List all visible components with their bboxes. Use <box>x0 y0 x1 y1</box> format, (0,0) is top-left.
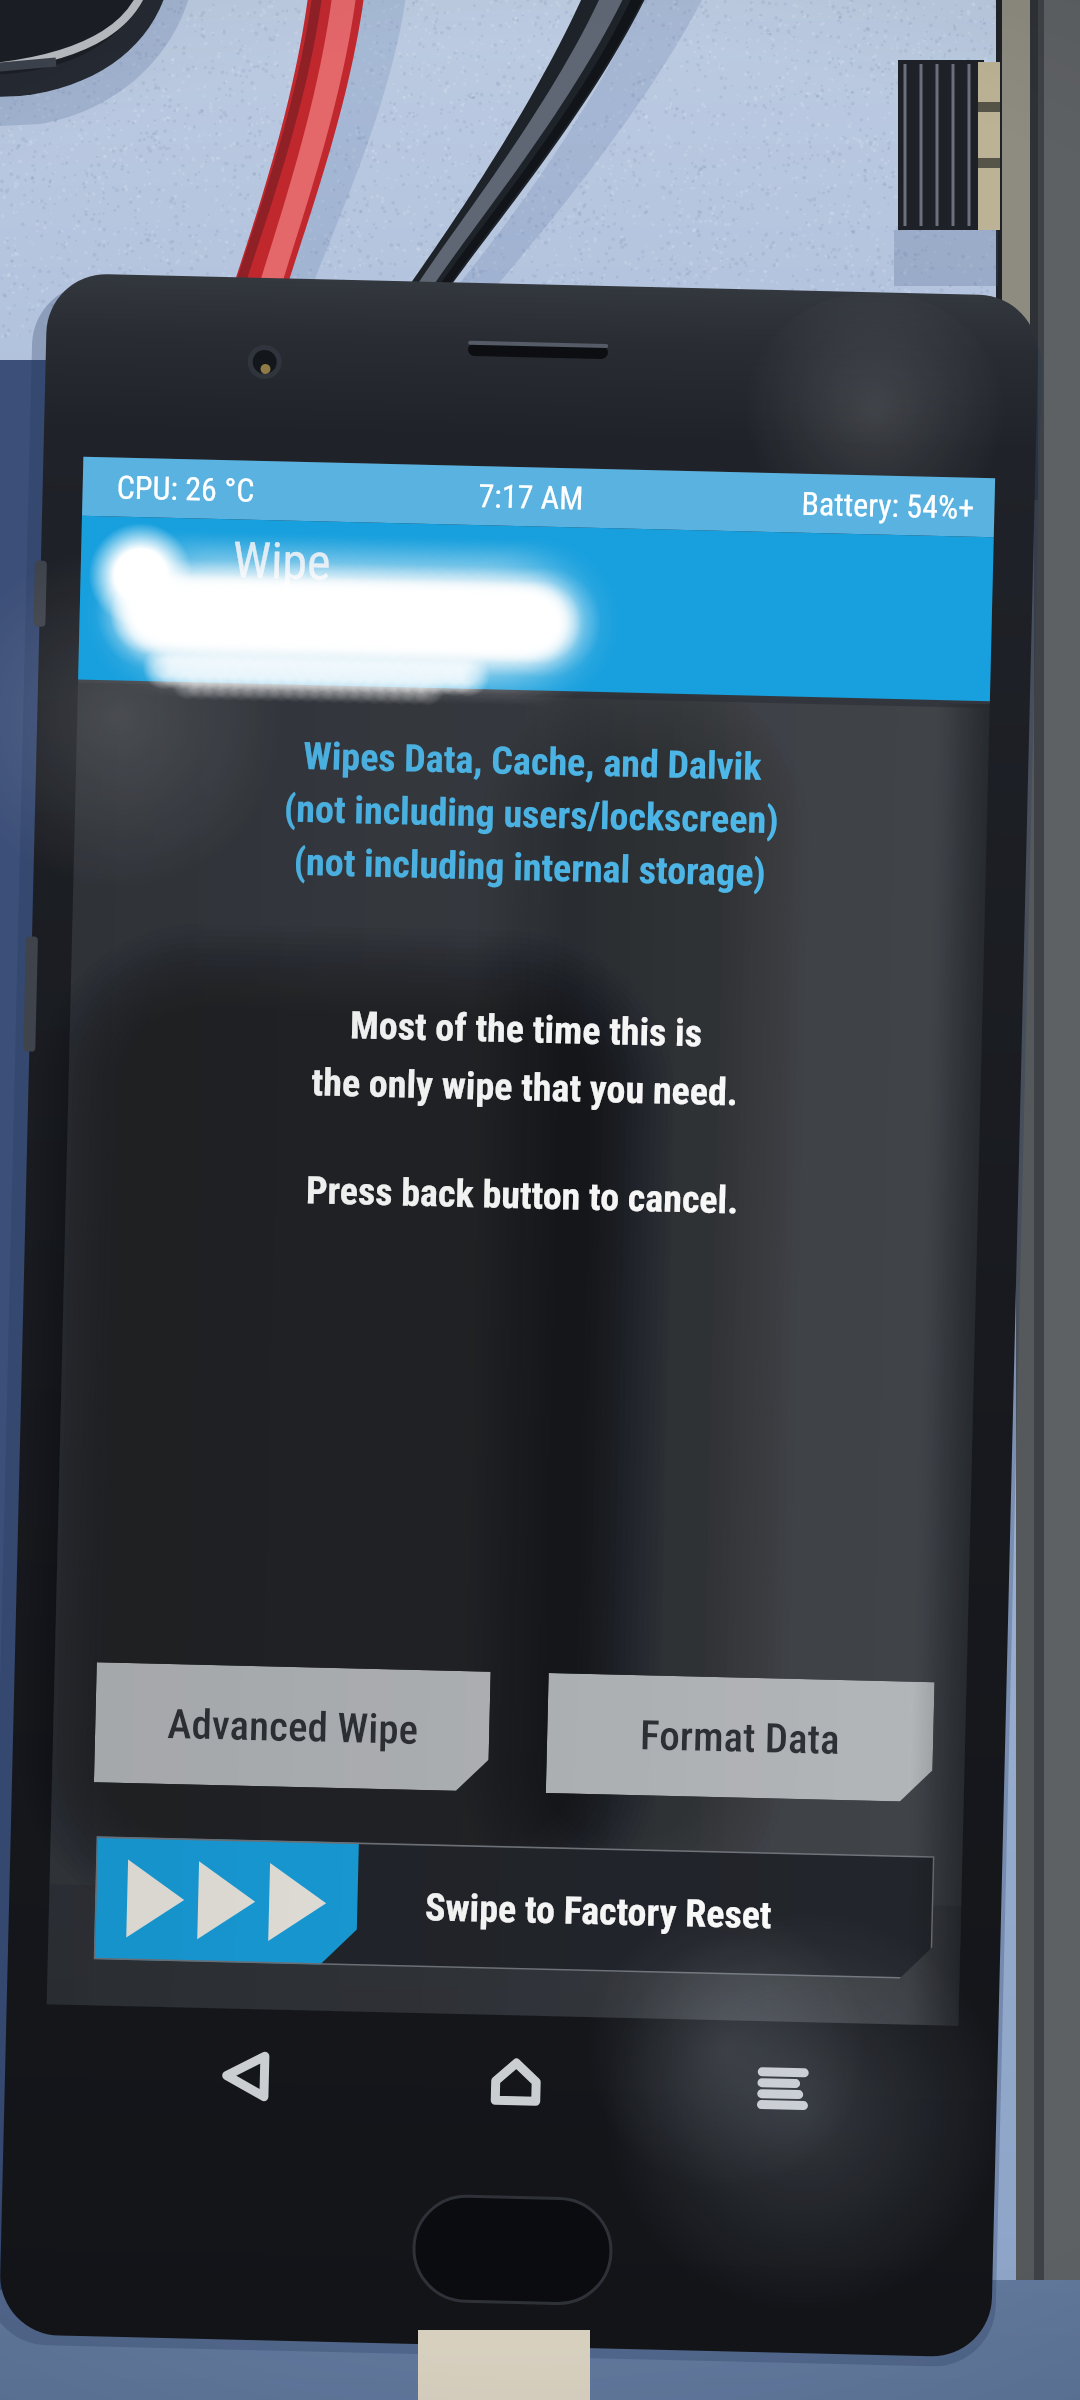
staticText: Battery: 54%+ <box>801 485 975 527</box>
button[interactable]: Swipe to Factory Reset <box>94 1836 934 1979</box>
staticText: the only wipe that you need. <box>311 1060 739 1115</box>
staticText: (not including internal storage) <box>293 840 766 896</box>
staticText: Wipes Data, Cache, and Dalvik <box>303 734 763 790</box>
staticText: Swipe to Factory Reset <box>424 1885 772 1938</box>
staticText: (not including users/lockscreen) <box>284 786 779 843</box>
button[interactable]: Home key <box>413 2195 612 2305</box>
staticText: CPU: 26 °C <box>116 468 255 510</box>
button[interactable]: Format Data <box>546 1673 934 1802</box>
button[interactable]: Recent apps <box>690 2027 875 2151</box>
button[interactable]: Home <box>423 2020 608 2144</box>
staticText: Press back button to cancel. <box>305 1168 739 1223</box>
staticText: Wipe <box>232 531 332 592</box>
button[interactable]: Back <box>154 2014 338 2138</box>
staticText: Format Data <box>640 1711 841 1764</box>
staticText: 7:17 AM <box>478 477 584 517</box>
staticText: Advanced Wipe <box>167 1700 419 1754</box>
button[interactable]: Advanced Wipe <box>94 1662 491 1792</box>
staticText: Most of the time this is <box>349 1003 703 1056</box>
